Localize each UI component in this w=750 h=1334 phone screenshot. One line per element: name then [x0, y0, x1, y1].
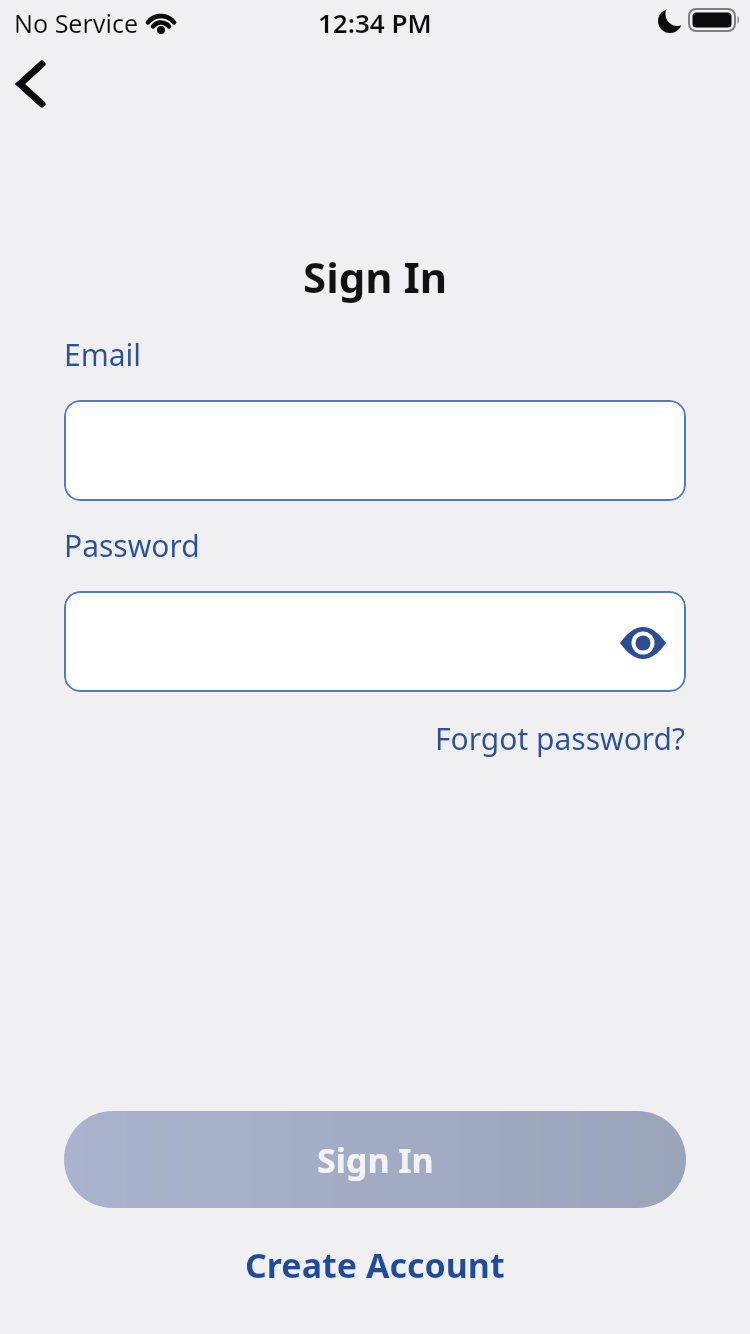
staticText: Forgot password?	[435, 718, 686, 759]
staticText: Password	[64, 525, 200, 566]
button[interactable]	[64, 591, 686, 692]
button[interactable]	[64, 400, 686, 501]
staticText: Sign In	[317, 1137, 434, 1183]
staticText: No Service	[14, 6, 139, 40]
staticText: 12:34 PM	[318, 5, 432, 40]
button[interactable]	[608, 608, 678, 678]
button[interactable]: Forgot password?	[435, 718, 686, 759]
button[interactable]: Sign In	[64, 1111, 686, 1208]
staticText: Email	[64, 334, 142, 375]
staticText: Sign In	[303, 248, 448, 305]
button[interactable]	[2, 50, 62, 116]
button[interactable]: Create Account	[245, 1242, 505, 1288]
staticText: Create Account	[245, 1242, 505, 1288]
